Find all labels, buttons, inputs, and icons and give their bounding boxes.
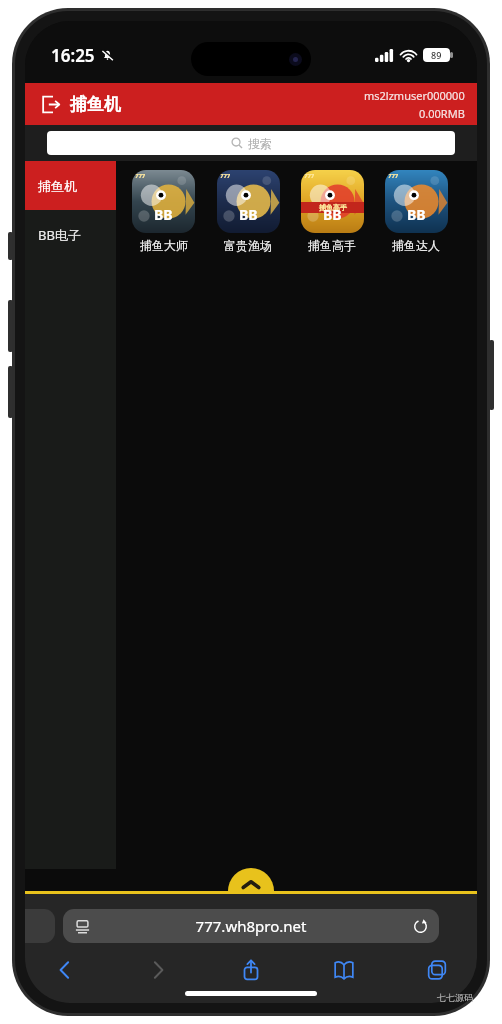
staticText: 七七源码 [437, 992, 473, 1003]
button[interactable]: Exit [37, 91, 124, 118]
staticText: BB [239, 205, 258, 224]
staticText: ms2lzmuser000000 [364, 88, 465, 103]
staticText: 富贵渔场 [224, 238, 272, 253]
staticText: 777 [388, 172, 399, 180]
button[interactable]: 777 [124, 170, 203, 253]
staticText: 捕鱼机 [38, 178, 77, 194]
staticText: 捕鱼达人 [392, 238, 440, 253]
staticText: 777 [135, 172, 146, 180]
staticText: 777.wh8pro.net [90, 916, 412, 936]
other: Reload [412, 918, 429, 935]
button[interactable]: 777 [293, 170, 371, 253]
staticText: 捕鱼机 [70, 94, 121, 115]
staticText: 捕鱼大师 [140, 238, 188, 253]
button[interactable]: 777 [209, 170, 287, 253]
staticText: 搜索 [248, 136, 272, 151]
button[interactable]: Tabs [413, 953, 461, 987]
button[interactable]: 搜索 [47, 131, 455, 155]
staticText: 89 [431, 49, 442, 61]
staticText: BB电子 [38, 226, 81, 244]
staticText: BB [154, 205, 173, 224]
staticText: 捕鱼高手 [308, 238, 356, 253]
staticText: BB [323, 205, 342, 224]
staticText: 777 [220, 172, 231, 180]
button[interactable]: Forward [134, 953, 182, 987]
other: Page settings [75, 919, 90, 934]
button[interactable]: ms2lzmuser000000 [364, 88, 465, 121]
button[interactable]: 捕鱼机 [25, 161, 116, 210]
button[interactable]: 777 [377, 170, 455, 253]
staticText: 777 [304, 172, 315, 180]
button[interactable]: BB电子 [25, 210, 116, 259]
staticText: 16:25 [51, 44, 95, 67]
staticText: 0.00RMB [419, 106, 465, 121]
button[interactable]: Page settings [63, 909, 439, 943]
button[interactable]: Back [41, 953, 89, 987]
button[interactable]: Share [227, 953, 275, 987]
other: Exit [40, 94, 61, 115]
staticText: BB [407, 205, 426, 224]
button[interactable]: Scroll to top [228, 869, 274, 891]
button[interactable]: Bookmarks [320, 953, 368, 987]
staticText: 捕鱼高手 [319, 203, 347, 212]
